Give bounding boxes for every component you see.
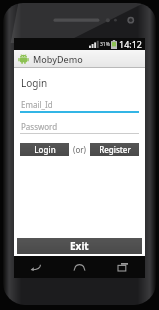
- staticText: (or): [73, 144, 86, 155]
- button[interactable]: Register: [90, 143, 139, 156]
- button[interactable]: Exit: [17, 238, 142, 254]
- button[interactable]: Email_Id: [20, 98, 139, 113]
- button[interactable]: Password: [20, 120, 139, 134]
- button[interactable]: Home: [57, 256, 101, 278]
- button[interactable]: Recent apps: [101, 256, 145, 278]
- staticText: 14:12: [119, 38, 143, 50]
- staticText: Password: [21, 121, 58, 132]
- staticText: MobyDemo: [33, 53, 83, 65]
- staticText: Login: [34, 144, 56, 155]
- staticText: Register: [99, 144, 131, 155]
- button[interactable]: Back: [14, 256, 57, 278]
- button[interactable]: Login: [20, 143, 69, 156]
- staticText: Email_Id: [21, 99, 53, 110]
- staticText: Login: [21, 76, 48, 90]
- staticText: Exit: [70, 239, 89, 253]
- other: App icon: [18, 53, 29, 64]
- staticText: 31%: [100, 41, 110, 48]
